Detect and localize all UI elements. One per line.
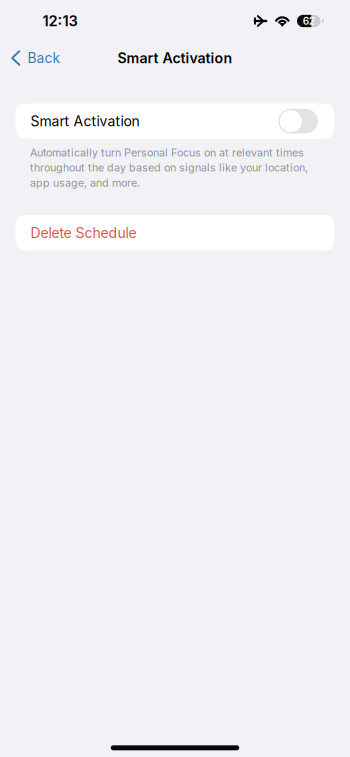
staticText: Back xyxy=(27,50,60,66)
staticText: Delete Schedule xyxy=(30,224,136,241)
staticText: Automatically turn Personal Focus on at … xyxy=(30,146,308,189)
button[interactable]: Delete Schedule xyxy=(15,215,334,251)
button[interactable]: Smart Activation xyxy=(15,103,334,139)
staticText: 12:13 xyxy=(42,12,77,30)
staticText: Smart Activation xyxy=(30,113,139,130)
staticText: 62 xyxy=(303,15,315,27)
staticText: Smart Activation xyxy=(117,49,232,66)
button[interactable]: Back xyxy=(0,42,70,74)
